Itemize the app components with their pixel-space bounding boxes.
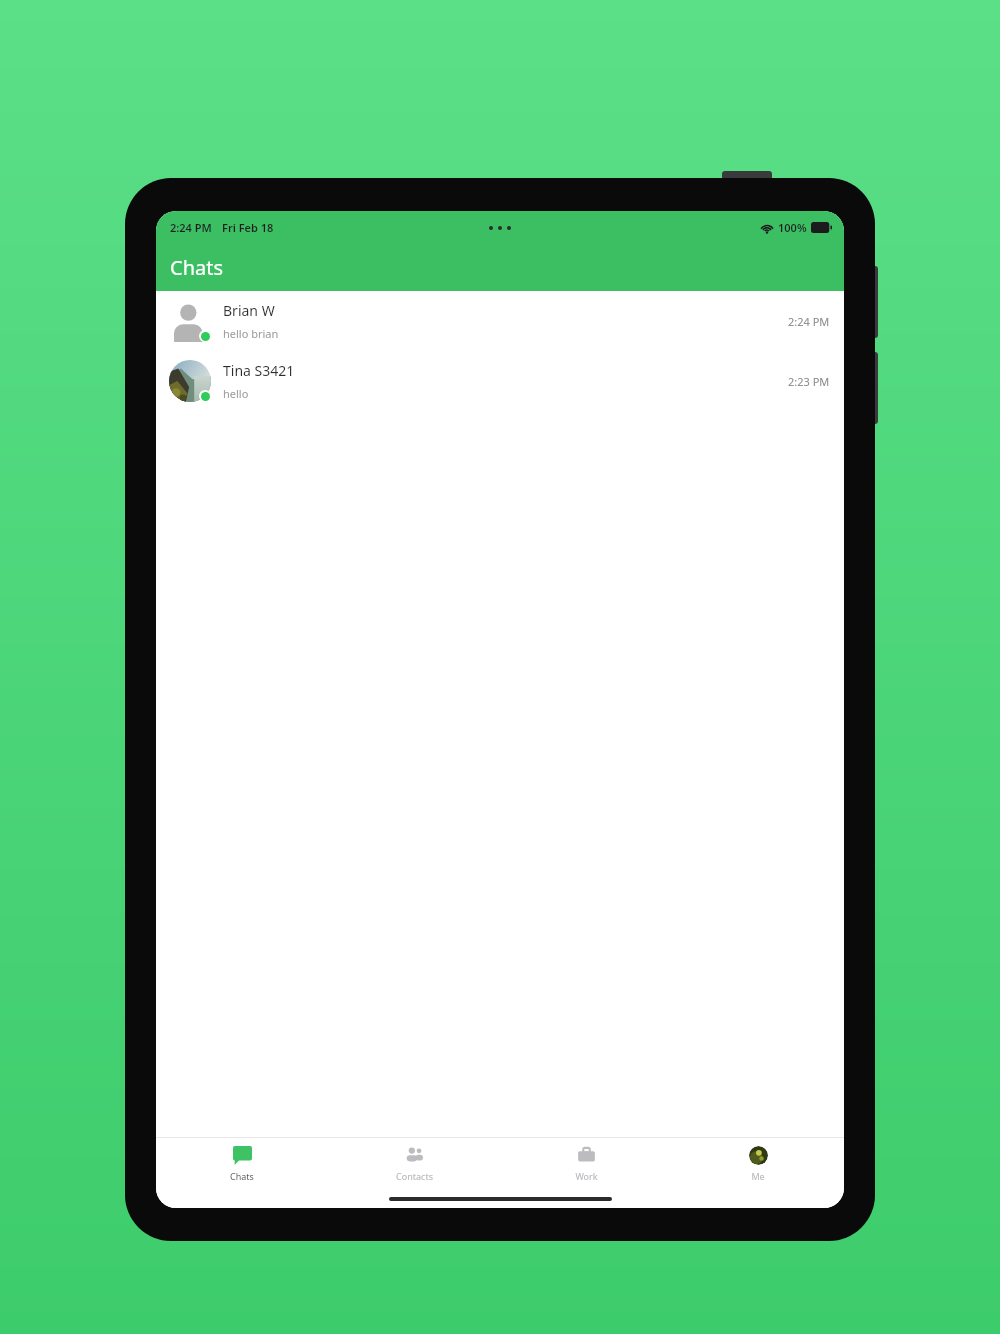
button[interactable]: Me profile bbox=[672, 1138, 844, 1190]
staticText: Chats bbox=[170, 254, 224, 281]
staticText: Chats bbox=[230, 1170, 254, 1182]
other: Contacts bbox=[405, 1146, 424, 1165]
staticText: Tina S3421 bbox=[223, 361, 295, 380]
button[interactable]: Contacts bbox=[328, 1138, 500, 1190]
staticText: 2:24 PM bbox=[170, 220, 212, 235]
staticText: hello brian bbox=[223, 326, 279, 341]
staticText: 2:24 PM bbox=[788, 314, 830, 329]
staticText: 2:23 PM bbox=[788, 374, 830, 389]
staticText: hello bbox=[223, 386, 249, 401]
staticText: Brian W bbox=[223, 301, 275, 320]
other: Chats bbox=[233, 1146, 252, 1165]
button[interactable]: Work bbox=[500, 1138, 672, 1190]
other: Me profile bbox=[749, 1146, 768, 1165]
staticText: Work bbox=[575, 1170, 598, 1182]
staticText: Contacts bbox=[396, 1170, 433, 1182]
button[interactable]: Brian W bbox=[156, 291, 844, 351]
staticText: Me bbox=[751, 1170, 765, 1182]
staticText: Fri Feb 18 bbox=[222, 220, 274, 235]
button[interactable]: Tina S3421 bbox=[156, 351, 844, 411]
staticText: 100% bbox=[778, 220, 807, 235]
button[interactable]: Chats bbox=[156, 1138, 328, 1190]
other: Work bbox=[577, 1146, 596, 1165]
